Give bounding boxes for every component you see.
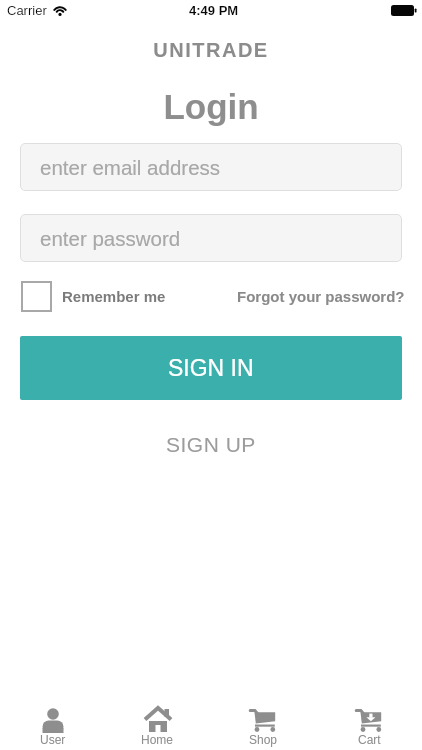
staticText: Login [0,87,422,126]
staticText: Remember me [62,288,166,305]
button[interactable]: Shop [210,695,316,750]
staticText: Home [141,733,174,746]
button[interactable]: Cart [316,695,422,750]
button[interactable]: enter password [20,214,402,262]
button[interactable]: SIGN IN [20,336,402,400]
button[interactable]: Home [105,695,210,750]
staticText: Carrier [7,3,47,18]
staticText: enter email address [40,156,221,179]
staticText: Cart [358,733,381,746]
staticText: User [40,733,66,746]
staticText: enter password [40,227,181,250]
button[interactable]: Forgot your password? [237,288,405,305]
staticText: SIGN IN [168,355,254,381]
button[interactable]: enter email address [20,143,402,191]
button[interactable] [21,281,52,312]
staticText: 4:49 PM [189,3,239,18]
staticText: Shop [249,733,278,746]
button[interactable]: SIGN UP [166,433,256,456]
staticText: UNITRADE [0,39,422,61]
button[interactable]: User [0,695,105,750]
